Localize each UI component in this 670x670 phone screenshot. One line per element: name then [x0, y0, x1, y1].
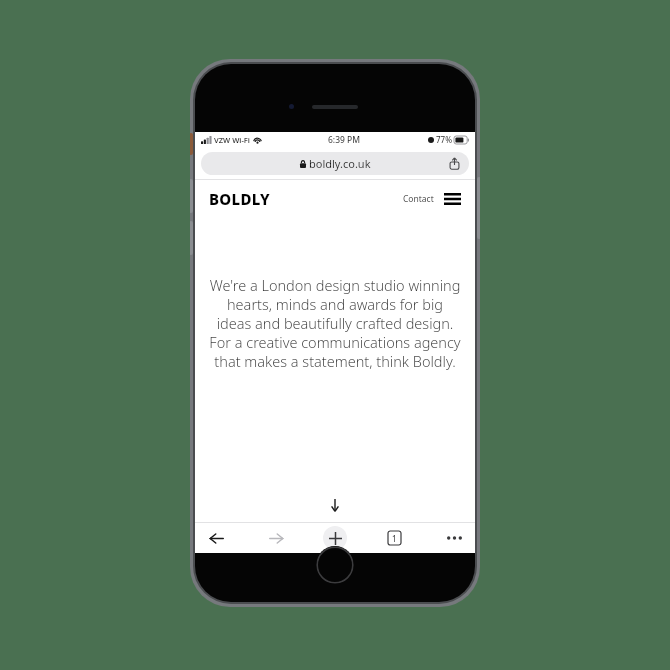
staticText: 6:39 PM: [328, 134, 361, 146]
staticText: 77%: [436, 134, 452, 145]
staticText: 1: [392, 533, 397, 544]
button[interactable]: More options: [441, 525, 467, 551]
button[interactable]: Forward: [263, 525, 289, 551]
button[interactable]: New tab: [323, 526, 347, 550]
button[interactable]: boldly.co.uk: [201, 152, 469, 175]
button[interactable]: Back: [203, 525, 229, 551]
button[interactable]: Share: [448, 157, 461, 170]
staticText: VZW Wi-Fi: [214, 135, 250, 145]
button[interactable]: Tabs: [381, 525, 407, 551]
staticText: boldly.co.uk: [309, 156, 371, 171]
button[interactable]: BOLDLY: [209, 189, 271, 209]
button[interactable]: Scroll down: [326, 496, 344, 514]
button[interactable]: Contact: [401, 193, 436, 205]
staticText: We're a London design studio winning hea…: [209, 275, 461, 371]
button[interactable]: Home: [316, 546, 354, 584]
button[interactable]: Menu: [444, 192, 461, 206]
